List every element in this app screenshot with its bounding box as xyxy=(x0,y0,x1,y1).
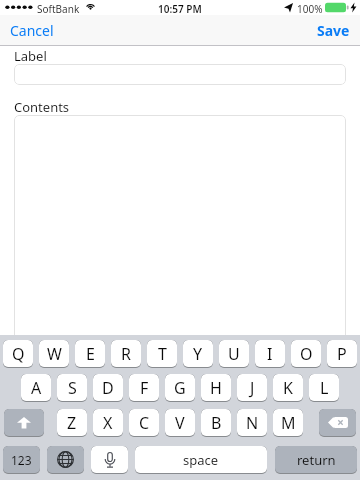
button[interactable]: return xyxy=(275,446,357,474)
button[interactable]: V xyxy=(165,409,195,437)
button[interactable]: R xyxy=(111,340,141,368)
button[interactable] xyxy=(14,64,346,85)
button[interactable]: I xyxy=(255,340,285,368)
staticText: R xyxy=(121,343,131,365)
staticText: I xyxy=(267,343,273,365)
staticText: F xyxy=(140,377,149,399)
button[interactable]: A xyxy=(21,374,51,402)
button[interactable]: X xyxy=(93,409,123,437)
button[interactable]: N xyxy=(237,409,267,437)
staticText: D xyxy=(102,377,114,399)
button[interactable]: G xyxy=(165,374,195,402)
staticText: SoftBank xyxy=(37,2,80,16)
staticText: Y xyxy=(193,343,203,365)
staticText: K xyxy=(283,377,293,399)
staticText: Q xyxy=(12,343,25,365)
button[interactable]: T xyxy=(147,340,177,368)
staticText: space xyxy=(183,451,219,469)
button[interactable]: M xyxy=(273,409,303,437)
button[interactable]: S xyxy=(57,374,87,402)
button[interactable]: C xyxy=(129,409,159,437)
button[interactable]: E xyxy=(75,340,105,368)
staticText: Save xyxy=(317,21,350,40)
button[interactable]: W xyxy=(39,340,69,368)
staticText: C xyxy=(139,412,150,434)
button[interactable]: L xyxy=(309,374,339,402)
staticText: U xyxy=(228,343,240,365)
button[interactable]: J xyxy=(237,374,267,402)
staticText: N xyxy=(246,412,259,434)
button[interactable]: K xyxy=(273,374,303,402)
staticText: H xyxy=(210,377,222,399)
button[interactable]: H xyxy=(201,374,231,402)
button[interactable]: Y xyxy=(183,340,213,368)
staticText: A xyxy=(31,377,42,399)
staticText: return xyxy=(297,451,336,469)
staticText: P xyxy=(337,343,347,365)
button[interactable]: P xyxy=(327,340,357,368)
staticText: E xyxy=(86,343,95,365)
button[interactable]: U xyxy=(219,340,249,368)
button[interactable] xyxy=(14,115,346,480)
button[interactable]: Save xyxy=(280,15,360,45)
staticText: O xyxy=(300,343,313,365)
button[interactable]: Cancel xyxy=(0,15,80,45)
button[interactable]: F xyxy=(129,374,159,402)
button[interactable]: 123 xyxy=(3,446,40,474)
staticText: V xyxy=(175,412,185,434)
staticText: Z xyxy=(67,412,77,434)
button[interactable] xyxy=(91,446,128,474)
staticText: M xyxy=(281,412,296,434)
staticText: J xyxy=(250,377,255,399)
staticText: 123 xyxy=(11,452,32,468)
button[interactable]: Q xyxy=(3,340,33,368)
button[interactable] xyxy=(319,409,356,437)
staticText: X xyxy=(103,412,113,434)
staticText: T xyxy=(158,343,167,365)
staticText: W xyxy=(47,343,62,365)
staticText: 10:57 PM xyxy=(158,2,202,16)
staticText: 100% xyxy=(297,2,323,16)
button[interactable] xyxy=(47,446,84,474)
staticText: S xyxy=(68,377,77,399)
staticText: Label xyxy=(14,47,47,65)
button[interactable]: O xyxy=(291,340,321,368)
staticText: Contents xyxy=(14,98,70,116)
button[interactable]: D xyxy=(93,374,123,402)
staticText: G xyxy=(174,377,186,399)
staticText: L xyxy=(320,377,329,399)
button[interactable]: B xyxy=(201,409,231,437)
staticText: Cancel xyxy=(10,21,54,40)
button[interactable]: space xyxy=(135,446,267,474)
button[interactable] xyxy=(4,409,44,437)
button[interactable]: Z xyxy=(57,409,87,437)
staticText: B xyxy=(211,412,222,434)
